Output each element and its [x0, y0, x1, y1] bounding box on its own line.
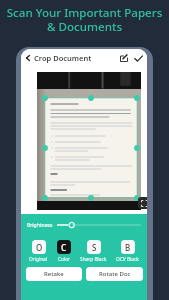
button[interactable]: C: [56, 240, 72, 263]
button[interactable]: Done: [131, 51, 145, 65]
staticText: Rotate Doc: [99, 270, 131, 278]
staticText: OCV Black: [116, 256, 139, 263]
staticText: S: [92, 242, 97, 253]
staticText: Sharp Black: [80, 256, 107, 263]
staticText: Scan Your Important Papers & Documents: [0, 5, 169, 34]
button[interactable]: Retake: [26, 267, 82, 281]
staticText: Retake: [44, 270, 64, 278]
staticText: Original: [29, 256, 48, 263]
staticText: Color: [58, 256, 71, 263]
staticText: Brightness: [27, 222, 53, 229]
button[interactable]: Expand: [138, 197, 147, 209]
staticText: O: [36, 242, 43, 253]
button[interactable]: Rotate Doc: [86, 267, 143, 281]
staticText: C: [61, 242, 67, 253]
button[interactable]: B: [115, 240, 140, 263]
button[interactable]: Edit: [117, 51, 131, 65]
button[interactable]: Back: [23, 53, 33, 63]
button[interactable]: O: [28, 240, 49, 263]
button[interactable]: S: [79, 240, 108, 263]
staticText: B: [125, 242, 131, 253]
staticText: Crop Document: [34, 53, 92, 63]
